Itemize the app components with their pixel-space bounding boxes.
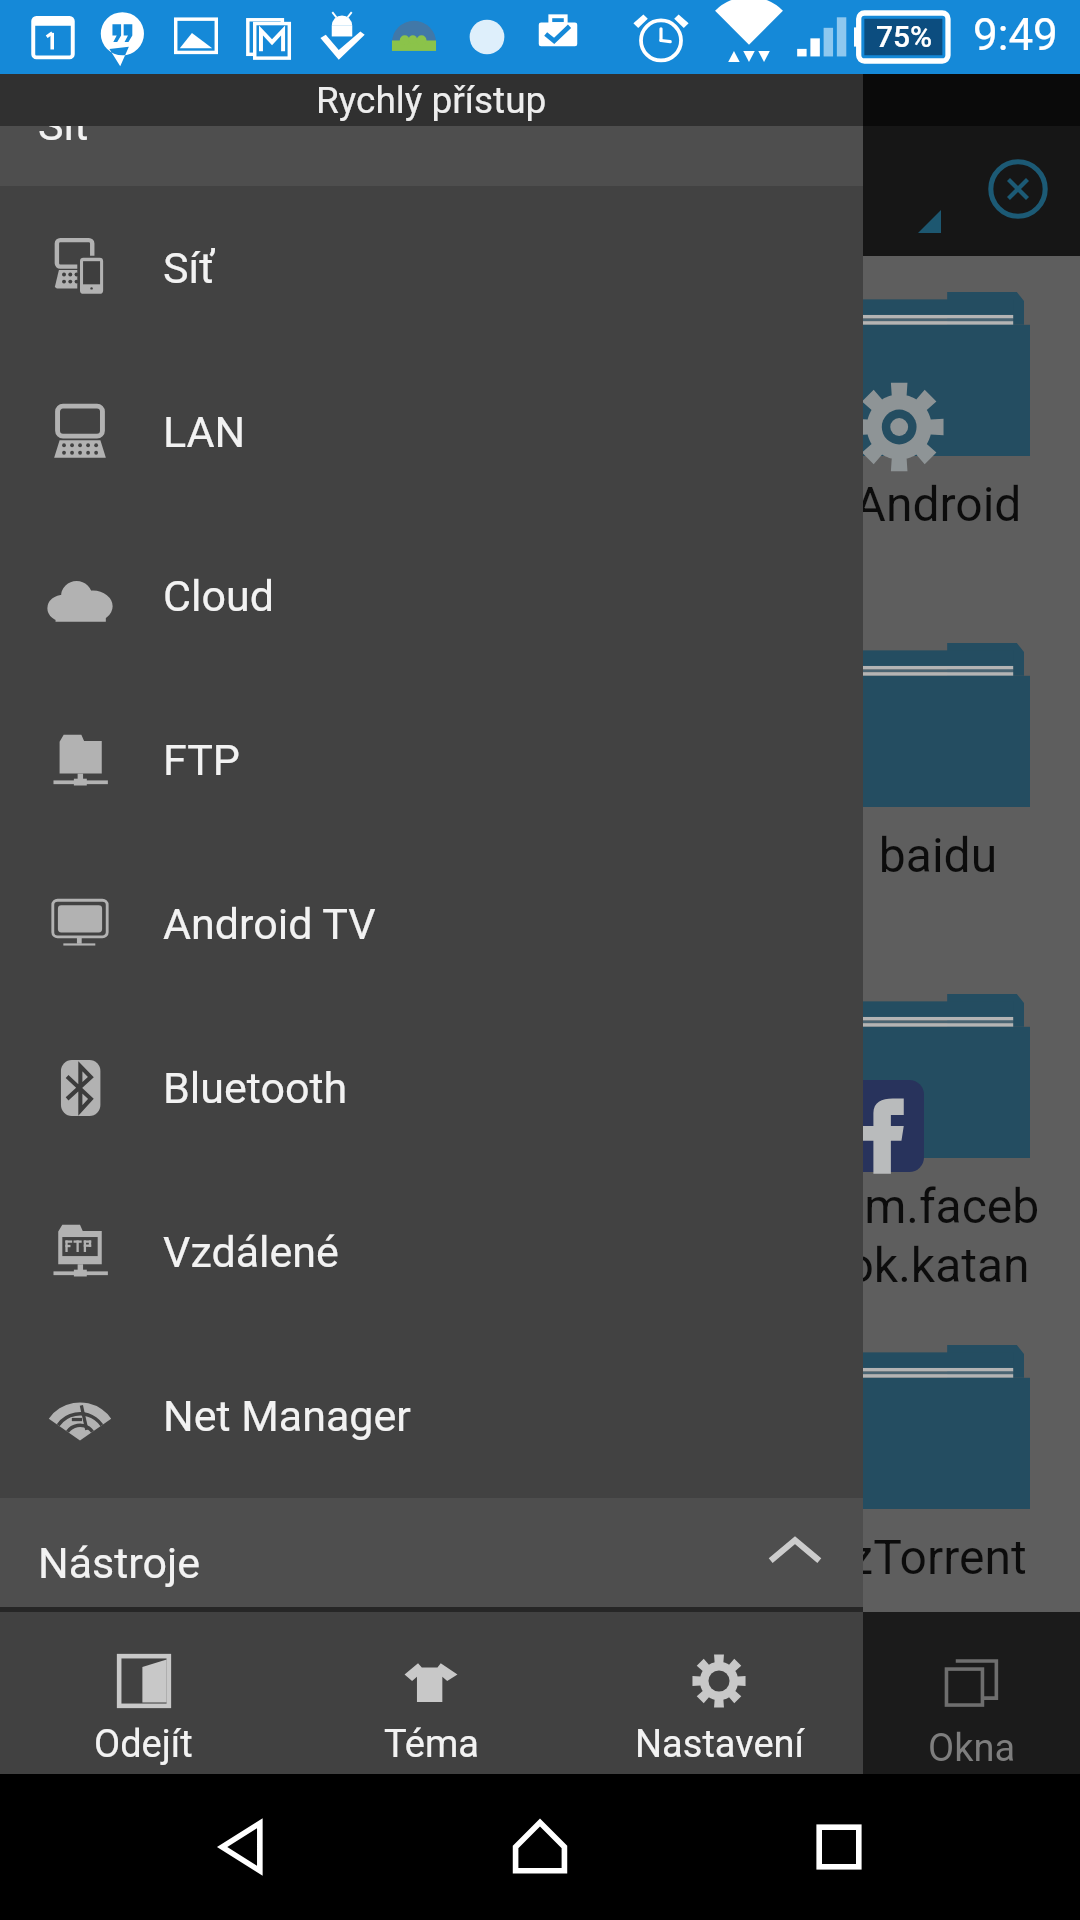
button[interactable]: baidu [778, 613, 1080, 943]
staticText: Rychlý přístup [316, 79, 547, 122]
staticText: Nastavení [635, 1722, 804, 1767]
staticText: Síť [38, 100, 90, 150]
button[interactable]: Cloud [0, 514, 863, 678]
staticText: LAN [163, 407, 246, 457]
staticText: baidu [778, 827, 1080, 883]
button[interactable]: FTP [0, 678, 863, 842]
button[interactable]: Android [778, 262, 1080, 592]
button[interactable]: Odejít [0, 1612, 287, 1774]
staticText: zTorrent [778, 1529, 1080, 1585]
staticText: Android TV [163, 899, 376, 949]
button[interactable]: Home [480, 1787, 600, 1907]
staticText: Nástroje [38, 1538, 201, 1588]
button[interactable]: Recent apps [779, 1787, 899, 1907]
staticText: Síť [163, 243, 215, 293]
button[interactable]: Bluetooth [0, 1006, 863, 1170]
button[interactable]: LAN [0, 350, 863, 514]
button[interactable]: Okna [863, 1612, 1080, 1774]
button[interactable]: zTorrent [778, 1315, 1080, 1645]
button[interactable]: Nástroje [0, 1498, 863, 1607]
staticText: Net Manager [163, 1391, 411, 1441]
staticText: Odejít [94, 1722, 193, 1767]
button[interactable]: Téma [287, 1612, 575, 1774]
staticText: 75% [876, 19, 933, 54]
button[interactable]: Nastavení [575, 1612, 863, 1774]
staticText: om.faceb ok.katan [778, 1178, 1080, 1293]
staticText: Vzdálené [163, 1227, 339, 1277]
button[interactable]: Close tab [973, 144, 1063, 234]
button[interactable]: om.facebok.katan [778, 964, 1080, 1294]
button[interactable]: Android TV [0, 842, 863, 1006]
staticText: Android [778, 476, 1080, 532]
button[interactable]: Back [184, 1787, 304, 1907]
staticText: FTP [163, 735, 240, 785]
staticText: Okna [928, 1726, 1016, 1771]
button[interactable]: Vzdálené [0, 1170, 863, 1334]
button[interactable]: Síť [0, 186, 863, 350]
staticText: Bluetooth [163, 1063, 348, 1113]
staticText: Cloud [163, 571, 274, 621]
button[interactable]: Net Manager [0, 1334, 863, 1498]
staticText: Téma [384, 1722, 479, 1767]
staticText: 9:49 [973, 9, 1058, 61]
